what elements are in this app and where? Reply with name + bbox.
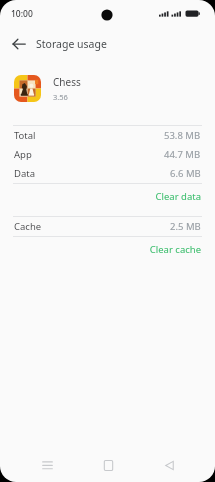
- button[interactable]: Clear cache: [0, 237, 215, 261]
- staticText: Clear cache: [149, 243, 201, 256]
- staticText: 6.6 MB: [170, 167, 201, 180]
- staticText: 3.56: [53, 92, 68, 102]
- staticText: Cache: [14, 220, 42, 233]
- staticText: Storage usage: [36, 37, 107, 51]
- button[interactable]: Chess: [0, 68, 215, 108]
- button[interactable]: Home: [93, 450, 123, 480]
- staticText: Data: [14, 167, 36, 180]
- staticText: Chess: [53, 75, 81, 89]
- staticText: 2.5 MB: [170, 220, 201, 233]
- button[interactable]: Back: [6, 31, 32, 57]
- staticText: Clear data: [155, 190, 201, 203]
- staticText: 10:00: [11, 8, 33, 20]
- staticText: App: [14, 148, 32, 161]
- button[interactable]: Cache: [0, 217, 215, 236]
- button[interactable]: App: [0, 145, 215, 164]
- staticText: 53.8 MB: [164, 129, 201, 142]
- staticText: 44.7 MB: [164, 148, 201, 161]
- button[interactable]: Clear data: [0, 184, 215, 208]
- staticText: Total: [14, 129, 36, 142]
- button[interactable]: Back: [154, 450, 184, 480]
- button[interactable]: Total: [0, 126, 215, 145]
- button[interactable]: Data: [0, 164, 215, 183]
- button[interactable]: Recent apps: [32, 450, 62, 480]
